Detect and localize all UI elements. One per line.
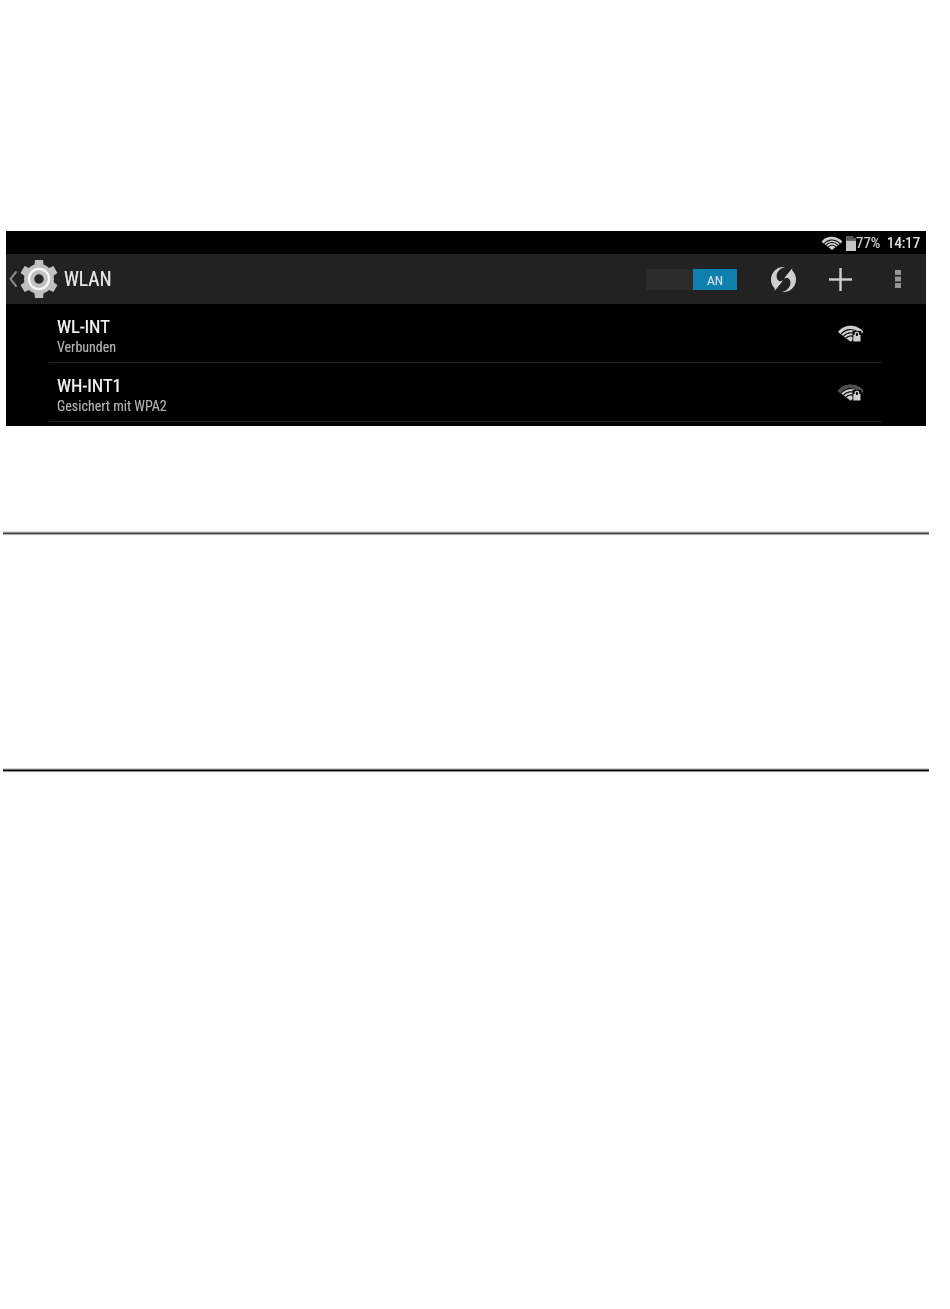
button[interactable]: Add network bbox=[821, 254, 859, 304]
staticText: Verbunden bbox=[57, 339, 117, 355]
button[interactable]: Wi-Fi on/off bbox=[646, 269, 737, 290]
staticText: WH-INT1 bbox=[57, 375, 122, 397]
button[interactable]: Scan for networks bbox=[764, 254, 802, 304]
staticText: WLAN bbox=[64, 268, 112, 291]
staticText: Gesichert mit WPA2 bbox=[57, 398, 167, 414]
staticText: 77% bbox=[856, 234, 881, 252]
button[interactable]: Navigate up to Settings bbox=[6, 254, 114, 304]
button[interactable]: WH-INT1 bbox=[6, 363, 926, 422]
button[interactable]: More options bbox=[880, 254, 916, 304]
staticText: 14:17 bbox=[887, 234, 921, 252]
button[interactable]: WL-INT bbox=[6, 304, 926, 363]
staticText: WL-INT bbox=[57, 316, 110, 338]
staticText: AN bbox=[707, 272, 724, 288]
